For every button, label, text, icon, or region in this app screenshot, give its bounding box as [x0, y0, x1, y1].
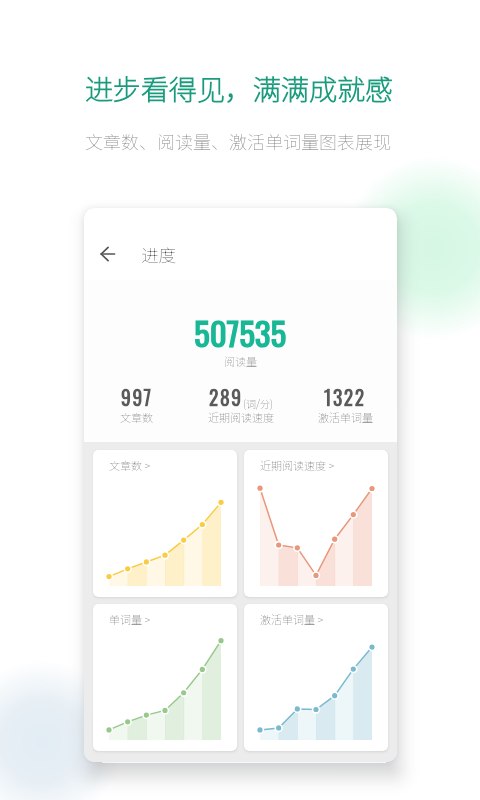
staticText: 近期阅读速度 — [208, 409, 274, 425]
staticText: 进步看得见，满满成就感 — [85, 68, 394, 109]
staticText: 文章数 — [120, 409, 153, 425]
button[interactable]: Back — [88, 234, 128, 274]
staticText: 近期阅读速度 > — [260, 457, 335, 473]
button[interactable]: 文章数 > — [93, 450, 237, 597]
staticText: 激活单词量 — [318, 409, 373, 425]
staticText: 文章数 > — [109, 457, 151, 473]
staticText: 单词量 > — [109, 611, 151, 627]
button[interactable]: 单词量 > — [93, 604, 237, 751]
staticText: 1322 — [324, 383, 366, 412]
staticText: 文章数、阅读量、激活单词量图表展现 — [85, 128, 391, 154]
button[interactable]: 激活单词量 > — [244, 604, 388, 751]
staticText: (词/分) — [243, 396, 273, 410]
staticText: 激活单词量 > — [260, 611, 324, 627]
staticText: 阅读量 — [224, 353, 257, 369]
staticText: 进度 — [141, 242, 176, 267]
button[interactable]: 近期阅读速度 > — [244, 450, 388, 597]
staticText: 507535 — [194, 308, 287, 357]
staticText: 997 — [121, 383, 153, 412]
staticText: 289 — [209, 383, 243, 412]
